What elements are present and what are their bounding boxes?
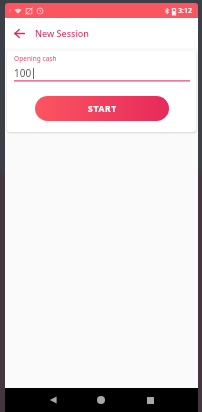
button[interactable]: Back (5, 19, 33, 47)
staticText: START (88, 103, 117, 115)
button[interactable]: START (35, 96, 169, 121)
staticText: New Session (35, 27, 90, 39)
button[interactable]: Home (89, 388, 113, 412)
button[interactable]: Recents (138, 388, 162, 412)
staticText: 3:12 (178, 6, 192, 16)
staticText: Opening cash (14, 54, 57, 63)
staticText: 100 (14, 66, 32, 80)
button[interactable]: Back (41, 388, 65, 412)
